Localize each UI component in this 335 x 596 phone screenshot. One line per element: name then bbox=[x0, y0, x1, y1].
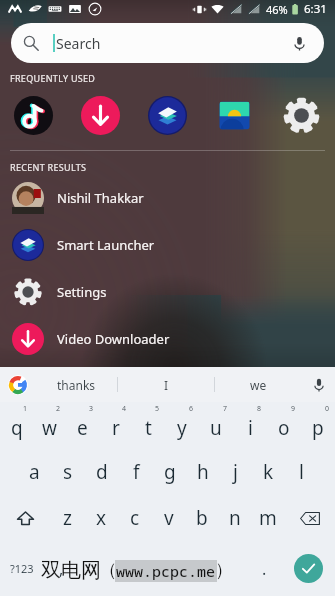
button[interactable]: Video Downloader bbox=[81, 96, 120, 135]
button[interactable]: c bbox=[118, 494, 152, 542]
staticText: ） bbox=[215, 559, 233, 582]
button[interactable]: t bbox=[132, 402, 165, 449]
staticText: ?123 bbox=[10, 561, 34, 576]
staticText: v bbox=[164, 505, 174, 531]
staticText: n bbox=[229, 505, 241, 531]
button[interactable]: o bbox=[267, 402, 301, 449]
button[interactable]: l bbox=[285, 449, 318, 494]
staticText: 0 bbox=[325, 404, 330, 414]
staticText: 4 bbox=[122, 404, 127, 414]
staticText: e bbox=[77, 415, 88, 441]
staticText: 2 bbox=[56, 404, 61, 414]
button[interactable]: Video Downloader bbox=[0, 315, 335, 362]
button[interactable]: TikTok bbox=[14, 96, 53, 135]
staticText: 双电网 bbox=[41, 558, 101, 583]
button[interactable]: r bbox=[99, 402, 132, 449]
staticText: 6:31 bbox=[304, 1, 327, 17]
staticText: （ bbox=[99, 559, 117, 582]
staticText: s bbox=[63, 459, 73, 485]
staticText: j bbox=[233, 459, 238, 485]
button[interactable]: I bbox=[118, 367, 214, 402]
button[interactable]: . bbox=[247, 542, 281, 595]
staticText: 9 bbox=[291, 404, 296, 414]
button[interactable]: ?123 bbox=[0, 542, 44, 595]
staticText: Nishil Thakkar bbox=[57, 189, 144, 207]
button[interactable]: we bbox=[215, 367, 302, 402]
staticText: RECENT RESULTS bbox=[10, 161, 87, 173]
staticText: 46% bbox=[266, 2, 288, 17]
button[interactable]: Enter bbox=[294, 554, 323, 583]
staticText: 7 bbox=[223, 404, 228, 414]
button[interactable]: e bbox=[66, 402, 99, 449]
button[interactable]: Gallery bbox=[215, 96, 254, 135]
button[interactable]: Smart Launcher bbox=[148, 96, 187, 135]
button[interactable]: y bbox=[165, 402, 199, 449]
button[interactable]: Nishil Thakkar bbox=[0, 174, 335, 221]
staticText: we bbox=[250, 377, 267, 393]
staticText: 5 bbox=[155, 404, 160, 414]
button[interactable]: v bbox=[152, 494, 185, 542]
button[interactable]: f bbox=[119, 449, 153, 494]
button[interactable]: a bbox=[17, 449, 51, 494]
staticText: k bbox=[263, 459, 274, 485]
button[interactable]: Settings bbox=[0, 268, 335, 315]
button[interactable]: Google bbox=[0, 367, 36, 402]
button[interactable]: j bbox=[219, 449, 252, 494]
button[interactable]: b bbox=[185, 494, 218, 542]
staticText: x bbox=[96, 505, 107, 531]
staticText: g bbox=[164, 459, 176, 485]
button[interactable]: Voice input bbox=[302, 367, 335, 402]
staticText: f bbox=[133, 459, 140, 485]
staticText: r bbox=[112, 415, 120, 441]
staticText: Smart Launcher bbox=[57, 236, 155, 254]
button[interactable]: k bbox=[252, 449, 285, 494]
staticText: FREQUENTLY USED bbox=[10, 72, 96, 84]
button[interactable]: Smart Launcher bbox=[0, 221, 335, 268]
staticText: o bbox=[278, 415, 290, 441]
button[interactable]: s bbox=[51, 449, 85, 494]
button[interactable]: d bbox=[85, 449, 119, 494]
staticText: z bbox=[63, 505, 72, 531]
button[interactable]: g bbox=[153, 449, 186, 494]
button[interactable]: , bbox=[44, 542, 78, 595]
staticText: p bbox=[312, 415, 324, 441]
staticText: q bbox=[11, 415, 23, 441]
staticText: i bbox=[248, 415, 253, 441]
staticText: m bbox=[259, 505, 277, 531]
button[interactable]: Search bbox=[11, 23, 324, 63]
staticText: t bbox=[145, 415, 152, 441]
staticText: 6 bbox=[189, 404, 194, 414]
button[interactable]: x bbox=[84, 494, 118, 542]
staticText: 8 bbox=[257, 404, 262, 414]
staticText: , bbox=[59, 558, 64, 580]
staticText: I bbox=[164, 377, 169, 393]
staticText: w bbox=[42, 415, 57, 441]
button[interactable]: m bbox=[251, 494, 284, 542]
button[interactable]: n bbox=[218, 494, 251, 542]
staticText: y bbox=[177, 415, 187, 441]
staticText: c bbox=[130, 505, 140, 531]
button[interactable]: z bbox=[50, 494, 84, 542]
button[interactable]: Space bbox=[78, 542, 247, 595]
staticText: l bbox=[299, 459, 304, 485]
button[interactable]: h bbox=[186, 449, 219, 494]
button[interactable]: Settings bbox=[282, 96, 321, 135]
staticText: thanks bbox=[57, 377, 96, 393]
button[interactable]: thanks bbox=[36, 367, 117, 402]
staticText: . bbox=[262, 558, 267, 580]
staticText: 3 bbox=[89, 404, 94, 414]
button[interactable]: w bbox=[33, 402, 66, 449]
staticText: Settings bbox=[57, 283, 107, 301]
staticText: 1 bbox=[23, 404, 28, 414]
button[interactable]: i bbox=[233, 402, 267, 449]
staticText: Video Downloader bbox=[57, 330, 170, 348]
button[interactable]: Backspace bbox=[284, 494, 335, 542]
staticText: a bbox=[29, 459, 40, 485]
button[interactable]: u bbox=[199, 402, 233, 449]
button[interactable]: q bbox=[0, 402, 33, 449]
staticText: Search bbox=[56, 34, 101, 53]
staticText: h bbox=[197, 459, 209, 485]
button[interactable]: Shift bbox=[0, 494, 50, 542]
button[interactable]: p bbox=[301, 402, 335, 449]
staticText: www.pcpc.me bbox=[116, 561, 216, 581]
